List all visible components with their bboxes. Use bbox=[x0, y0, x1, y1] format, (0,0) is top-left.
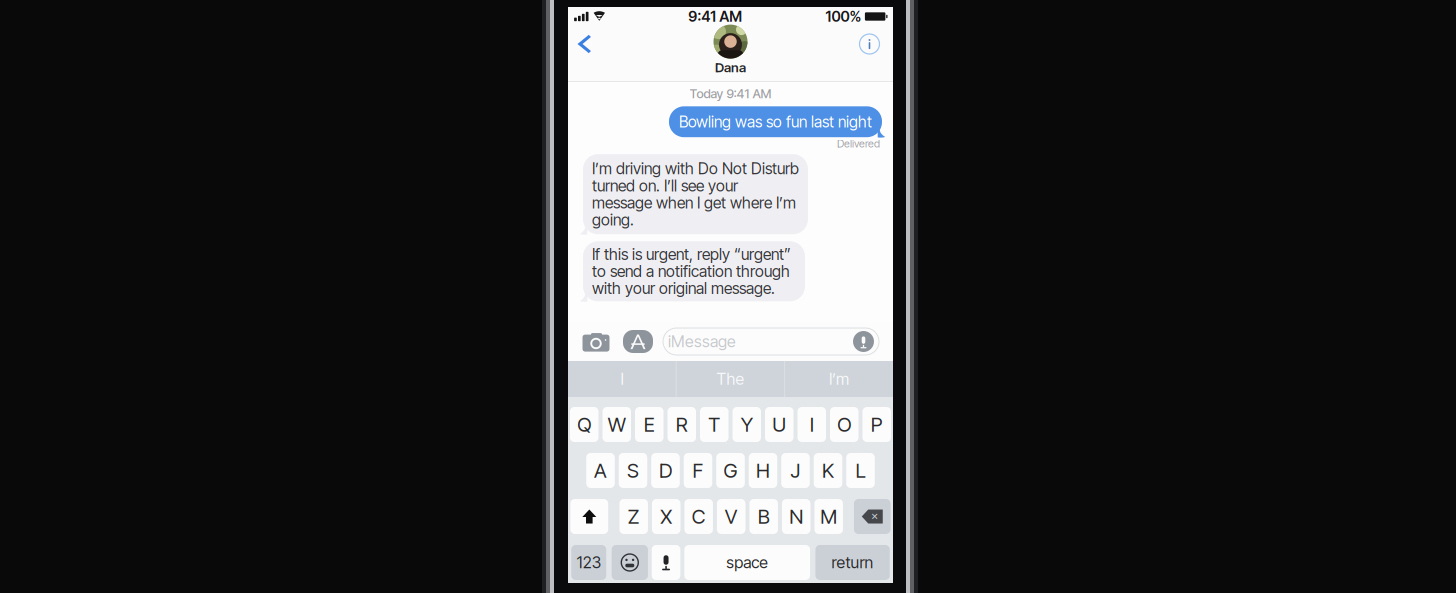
staticText: L bbox=[855, 458, 865, 483]
staticText: return bbox=[832, 553, 874, 572]
button[interactable]: Camera bbox=[577, 323, 615, 359]
button[interactable]: Shift bbox=[570, 499, 608, 534]
button[interactable]: Q bbox=[570, 407, 598, 442]
button[interactable]: K bbox=[814, 453, 842, 488]
button[interactable]: M bbox=[814, 499, 843, 534]
staticText: Dana bbox=[715, 59, 746, 75]
staticText: P bbox=[871, 412, 883, 437]
button[interactable]: Back bbox=[569, 24, 599, 64]
button[interactable]: E bbox=[635, 407, 663, 442]
button[interactable]: 123 bbox=[571, 545, 606, 580]
button[interactable]: N bbox=[782, 499, 810, 534]
staticText: D bbox=[659, 458, 672, 483]
button[interactable]: U bbox=[765, 407, 793, 442]
staticText: iMessage bbox=[668, 332, 736, 351]
staticText: X bbox=[660, 504, 672, 529]
staticText: The bbox=[716, 369, 744, 389]
staticText: If this is urgent, reply “urgent” to sen… bbox=[592, 245, 791, 298]
staticText: I bbox=[810, 412, 814, 437]
button[interactable]: Delete bbox=[854, 499, 891, 534]
staticText: Y bbox=[741, 412, 753, 437]
staticText: 100% bbox=[825, 8, 861, 25]
button[interactable]: Dictation bbox=[652, 545, 680, 580]
button[interactable]: space bbox=[684, 545, 810, 580]
staticText: S bbox=[627, 458, 639, 483]
button[interactable]: return bbox=[815, 545, 890, 580]
staticText: K bbox=[822, 458, 834, 483]
button[interactable]: Y bbox=[732, 407, 761, 442]
staticText: Q bbox=[577, 412, 591, 437]
staticText: H bbox=[756, 458, 770, 483]
staticText: F bbox=[692, 458, 703, 483]
button[interactable]: O bbox=[830, 407, 858, 442]
staticText: Today 9:41 AM bbox=[689, 86, 771, 101]
staticText: G bbox=[723, 458, 737, 483]
button[interactable]: S bbox=[619, 453, 647, 488]
button[interactable]: iMessage apps bbox=[621, 323, 655, 359]
staticText: M bbox=[820, 504, 837, 529]
button[interactable]: B bbox=[749, 499, 778, 534]
button[interactable]: F bbox=[684, 453, 712, 488]
button[interactable]: The bbox=[677, 361, 784, 397]
staticText: U bbox=[772, 412, 786, 437]
button[interactable]: L bbox=[846, 453, 875, 488]
staticText: E bbox=[644, 412, 655, 437]
staticText: T bbox=[708, 412, 720, 437]
button[interactable]: T bbox=[700, 407, 728, 442]
button[interactable]: Emoji keyboard bbox=[612, 545, 648, 580]
staticText: I’m driving with Do Not Disturb turned o… bbox=[592, 159, 799, 229]
button[interactable]: J bbox=[781, 453, 810, 488]
button[interactable]: I bbox=[797, 407, 826, 442]
button[interactable]: Details bbox=[849, 24, 889, 64]
staticText: C bbox=[692, 504, 706, 529]
staticText: I bbox=[620, 369, 623, 389]
staticText: Delivered bbox=[837, 137, 880, 150]
staticText: W bbox=[608, 412, 626, 437]
button[interactable]: Z bbox=[619, 499, 648, 534]
staticText: 123 bbox=[577, 553, 601, 572]
button[interactable]: W bbox=[602, 407, 631, 442]
staticText: J bbox=[790, 458, 800, 483]
staticText: 9:41 AM bbox=[688, 8, 742, 25]
button[interactable]: H bbox=[749, 453, 777, 488]
button[interactable]: R bbox=[667, 407, 696, 442]
staticText: I’m bbox=[829, 369, 849, 389]
staticText: R bbox=[676, 412, 688, 437]
staticText: A bbox=[594, 458, 607, 483]
staticText: space bbox=[726, 553, 768, 572]
button[interactable]: A bbox=[586, 453, 615, 488]
staticText: N bbox=[789, 504, 803, 529]
staticText: Z bbox=[628, 504, 640, 529]
button[interactable]: C bbox=[684, 499, 713, 534]
staticText: ✕ bbox=[871, 511, 879, 522]
button[interactable]: V bbox=[717, 499, 745, 534]
button[interactable]: G bbox=[716, 453, 745, 488]
staticText: V bbox=[725, 504, 738, 529]
staticText: O bbox=[837, 412, 851, 437]
button[interactable]: P bbox=[862, 407, 891, 442]
button[interactable]: X bbox=[652, 499, 680, 534]
staticText: B bbox=[758, 504, 770, 529]
button[interactable]: D bbox=[651, 453, 680, 488]
button[interactable]: I’m bbox=[785, 361, 893, 397]
staticText: Bowling was so fun last night bbox=[679, 112, 872, 131]
